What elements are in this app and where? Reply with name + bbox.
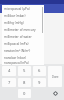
button[interactable]: millimeter of water (mmH2O) [2, 33, 44, 40]
button[interactable]: 4 [2, 66, 16, 76]
button[interactable]: 8 [18, 78, 31, 87]
staticText: 9 [38, 80, 41, 86]
staticText: millimeter of mercury (mmHg) [4, 28, 41, 32]
staticText: nanopascal (nPa) [4, 61, 29, 65]
button[interactable]: micropascal (µPa) [2, 5, 44, 12]
staticText: 8 [23, 80, 26, 86]
button[interactable]: Done [48, 66, 62, 87]
staticText: 7 [8, 80, 11, 86]
button[interactable]: 6 [33, 66, 46, 76]
button[interactable]: nanopascal (nPa) [2, 61, 44, 65]
button[interactable]: nanobar (nbar) [2, 54, 44, 61]
staticText: 0 [23, 91, 26, 97]
staticText: millimeter of water (mmH2O) [4, 35, 41, 39]
staticText: millihg (mHg) [4, 21, 24, 25]
staticText: 5 [23, 68, 26, 74]
button[interactable]: millihg (mHg) [2, 19, 44, 26]
staticText: 6 [38, 68, 41, 74]
staticText: millipascal (mPa) [4, 42, 29, 46]
staticText: Done [52, 75, 59, 79]
staticText: newton/m² (N/m²) [4, 49, 31, 53]
button[interactable]: Settings [48, 89, 62, 98]
staticText: nanobar (nbar) [4, 56, 26, 60]
button[interactable]: 9 [33, 78, 46, 87]
staticText: micropascal (µPa) [4, 7, 30, 11]
button[interactable]: millibar (mbar) [2, 12, 44, 19]
button[interactable]: 0 [18, 89, 31, 98]
staticText: 4 [8, 68, 11, 74]
button[interactable]: millipascal (mPa) [2, 40, 44, 47]
button[interactable]: 7 [2, 78, 16, 87]
button[interactable]: 5 [18, 66, 31, 76]
button[interactable]: newton/m² (N/m²) [2, 47, 44, 54]
staticText: millibar (mbar) [4, 14, 26, 18]
button[interactable]: millimeter of mercury (mmHg) [2, 26, 44, 33]
